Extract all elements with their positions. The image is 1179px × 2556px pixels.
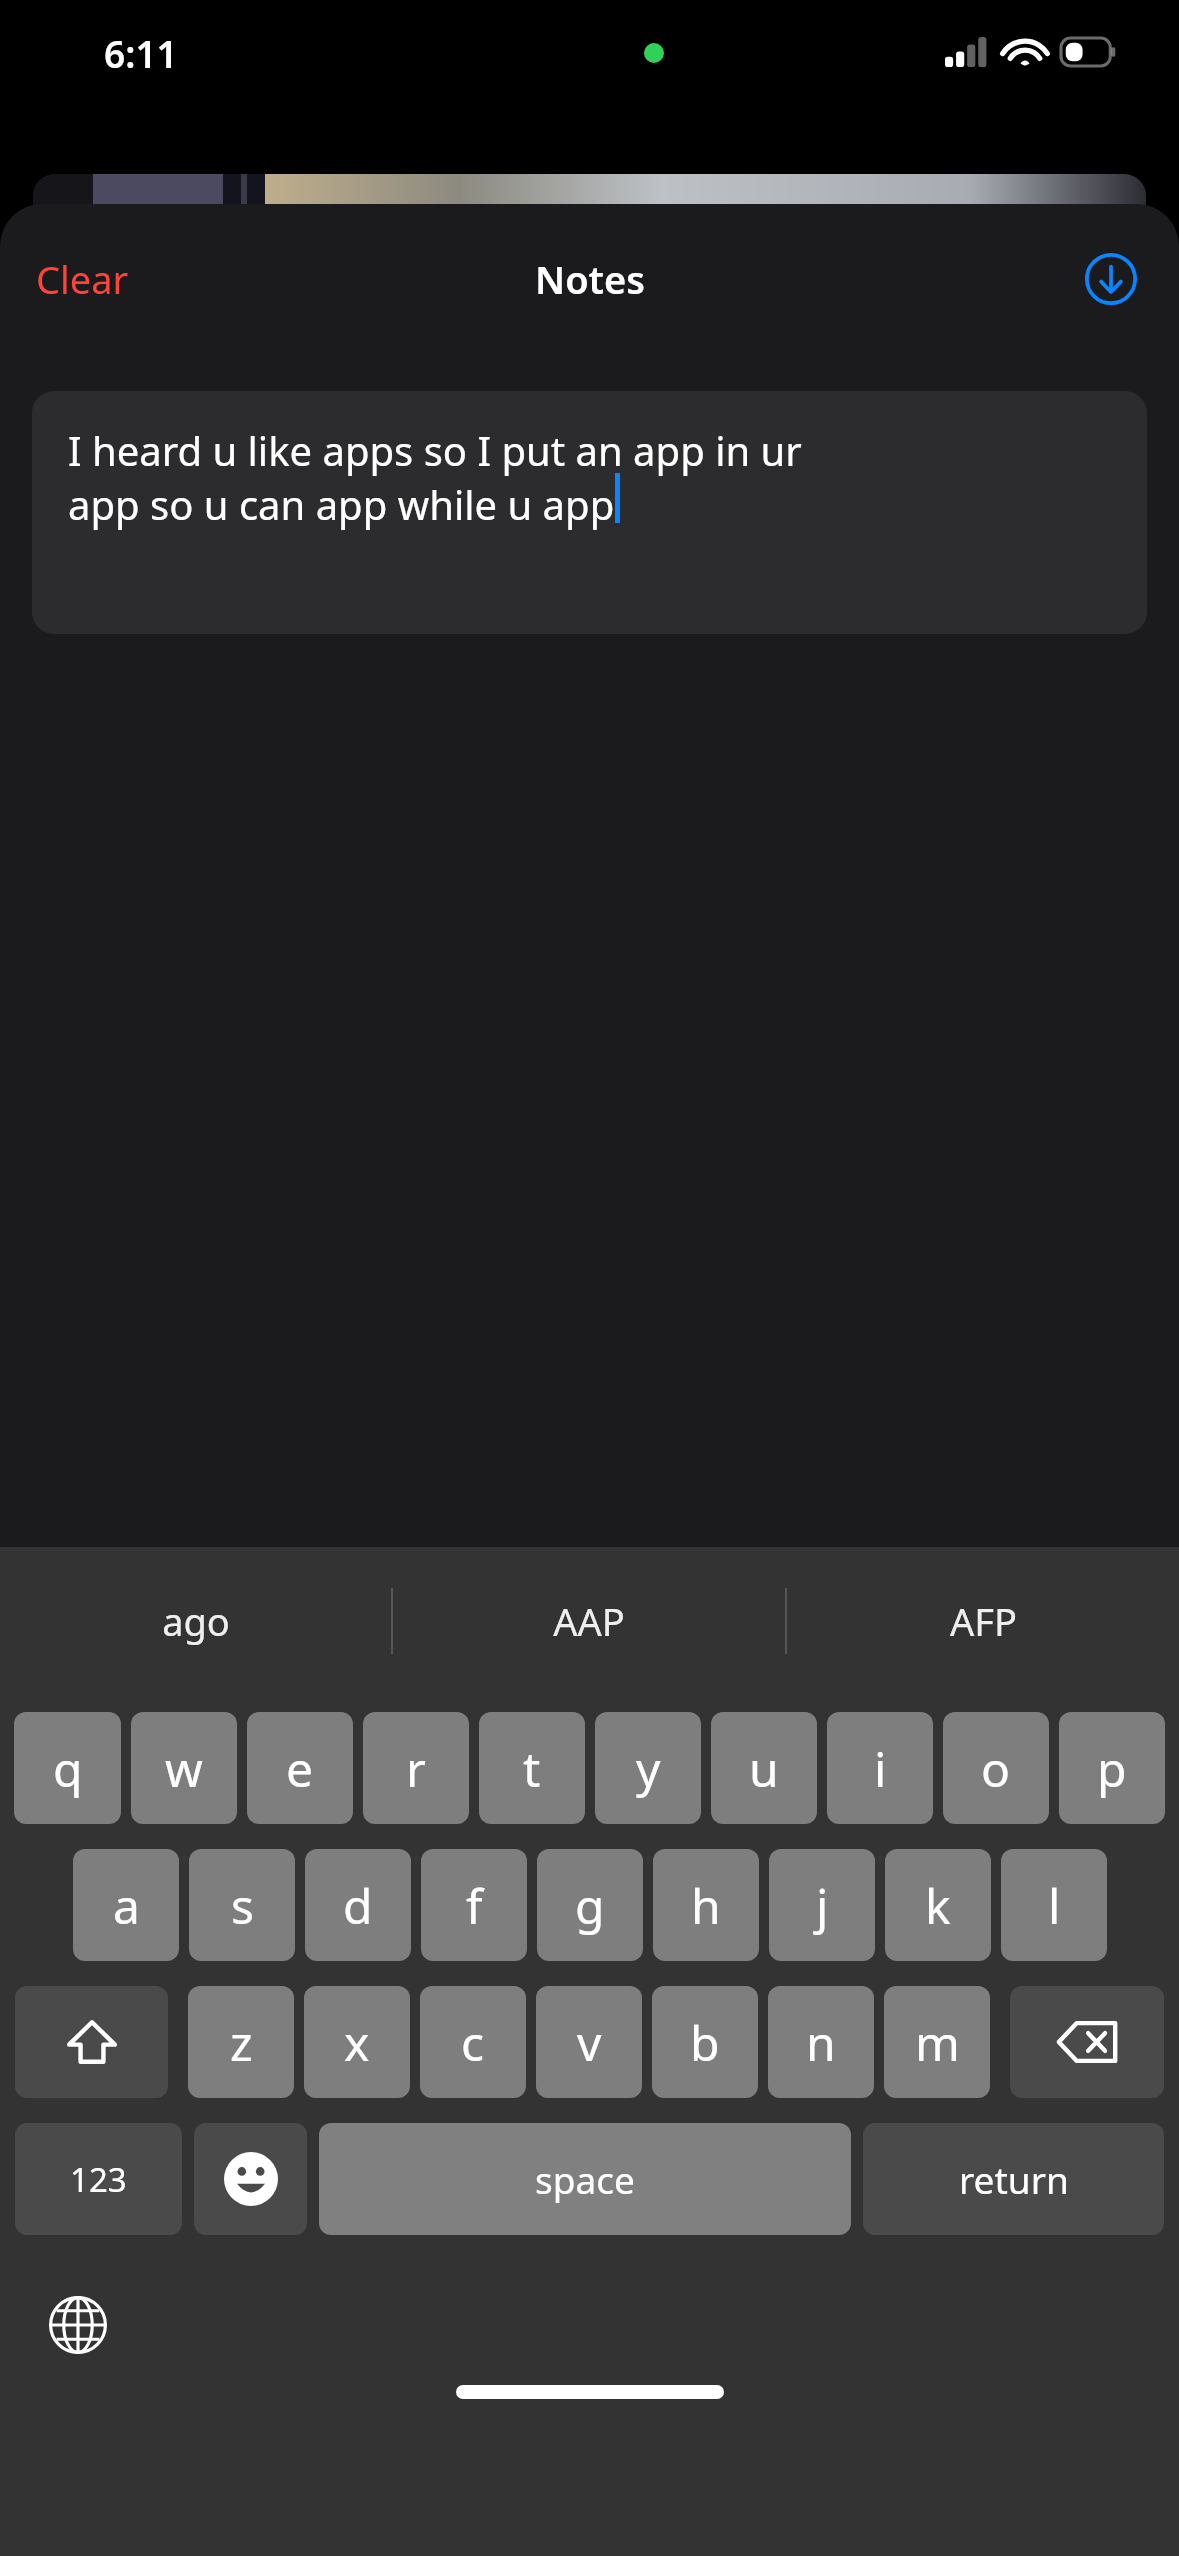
- button[interactable]: I heard u like apps so I put an app in u…: [32, 391, 1147, 634]
- button[interactable]: space: [319, 2123, 851, 2235]
- staticText: w: [165, 1736, 203, 1801]
- button[interactable]: m: [884, 1986, 990, 2098]
- staticText: u: [749, 1736, 779, 1801]
- staticText: i: [874, 1736, 887, 1801]
- button[interactable]: Download: [1077, 245, 1145, 313]
- button[interactable]: AAP: [393, 1547, 785, 1694]
- staticText: ago: [162, 1595, 230, 1647]
- staticText: q: [53, 1736, 83, 1801]
- button[interactable]: x: [304, 1986, 410, 2098]
- staticText: j: [816, 1873, 829, 1938]
- staticText: AAP: [553, 1595, 625, 1647]
- staticText: z: [230, 2010, 253, 2075]
- staticText: r: [406, 1736, 426, 1801]
- button[interactable]: Backspace: [1010, 1986, 1164, 2098]
- button[interactable]: Change keyboard: [38, 2285, 118, 2365]
- staticText: l: [1048, 1873, 1061, 1938]
- button[interactable]: v: [536, 1986, 642, 2098]
- staticText: v: [577, 2010, 602, 2075]
- button[interactable]: w: [131, 1712, 237, 1824]
- staticText: h: [691, 1873, 721, 1938]
- staticText: 6:11: [104, 28, 178, 78]
- staticText: I heard u like apps so I put an app in u…: [68, 423, 802, 477]
- button[interactable]: Clear: [14, 241, 151, 317]
- button[interactable]: z: [188, 1986, 294, 2098]
- button[interactable]: q: [14, 1712, 121, 1824]
- button[interactable]: p: [1059, 1712, 1165, 1824]
- button[interactable]: l: [1001, 1849, 1107, 1961]
- staticText: b: [690, 2010, 720, 2075]
- button[interactable]: k: [885, 1849, 991, 1961]
- button[interactable]: a: [73, 1849, 179, 1961]
- button[interactable]: Emoji: [194, 2123, 307, 2235]
- button[interactable]: h: [653, 1849, 759, 1961]
- button[interactable]: d: [305, 1849, 411, 1961]
- button[interactable]: j: [769, 1849, 875, 1961]
- staticText: x: [344, 2010, 370, 2075]
- button[interactable]: return: [863, 2123, 1164, 2235]
- staticText: y: [636, 1736, 661, 1801]
- button[interactable]: 123: [15, 2123, 182, 2235]
- button[interactable]: f: [421, 1849, 527, 1961]
- staticText: Clear: [36, 253, 129, 305]
- button[interactable]: ago: [0, 1547, 391, 1694]
- staticText: p: [1097, 1736, 1127, 1801]
- button[interactable]: c: [420, 1986, 526, 2098]
- staticText: space: [535, 2154, 635, 2204]
- staticText: f: [466, 1873, 483, 1938]
- button[interactable]: r: [363, 1712, 469, 1824]
- button[interactable]: b: [652, 1986, 758, 2098]
- staticText: AFP: [950, 1595, 1017, 1647]
- staticText: o: [981, 1736, 1011, 1801]
- staticText: Notes: [535, 253, 645, 305]
- staticText: g: [575, 1873, 605, 1938]
- button[interactable]: g: [537, 1849, 643, 1961]
- button[interactable]: e: [247, 1712, 353, 1824]
- staticText: 123: [70, 2157, 127, 2202]
- button[interactable]: t: [479, 1712, 585, 1824]
- button[interactable]: n: [768, 1986, 874, 2098]
- button[interactable]: u: [711, 1712, 817, 1824]
- button[interactable]: AFP: [787, 1547, 1179, 1694]
- button[interactable]: y: [595, 1712, 701, 1824]
- staticText: c: [461, 2010, 485, 2075]
- button[interactable]: s: [189, 1849, 295, 1961]
- button[interactable]: i: [827, 1712, 933, 1824]
- staticText: app so u can app while u app: [68, 477, 615, 531]
- staticText: return: [959, 2154, 1069, 2204]
- staticText: s: [231, 1873, 254, 1938]
- staticText: a: [113, 1873, 140, 1938]
- button[interactable]: Shift: [15, 1986, 168, 2098]
- staticText: t: [523, 1736, 541, 1801]
- staticText: m: [915, 2010, 960, 2075]
- button[interactable]: o: [943, 1712, 1049, 1824]
- staticText: k: [925, 1873, 951, 1938]
- staticText: e: [286, 1736, 314, 1801]
- staticText: n: [806, 2010, 836, 2075]
- staticText: d: [343, 1873, 373, 1938]
